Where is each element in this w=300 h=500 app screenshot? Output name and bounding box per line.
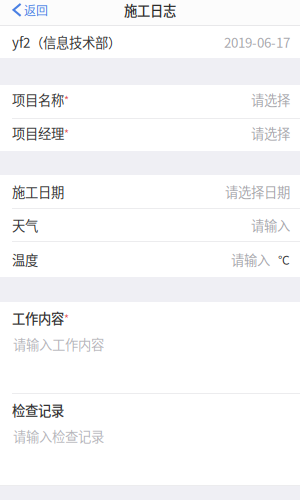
staticText: * [64,310,69,326]
staticText: 请选择日期 [225,182,290,201]
staticText: 工作内容 [12,308,64,328]
staticText: 请输入工作内容 [13,334,104,354]
staticText: 请输入 [231,250,270,269]
staticText: 2019-06-17 [224,32,290,52]
staticText: 返回 [24,1,48,19]
button[interactable]: 天气 [0,209,300,241]
button[interactable]: 项目经理 [0,119,300,151]
staticText: 项目经理 [12,123,64,143]
button[interactable]: 温度 [0,242,300,277]
staticText: 施工日志 [124,0,176,20]
staticText: 请输入检查记录 [13,426,104,446]
staticText: 项目名称 [12,90,64,109]
staticText: 请选择 [251,123,290,143]
staticText: 请选择 [251,90,290,109]
staticText: 请输入 [251,215,290,235]
staticText: yf2（信息技术部） [12,32,121,52]
button[interactable]: 施工日期 [0,175,300,208]
button[interactable]: 项目名称 [0,85,300,118]
button[interactable]: 请输入检查记录 [0,426,300,485]
staticText: °C [278,251,290,268]
staticText: * [64,92,69,107]
staticText: 施工日期 [12,182,64,201]
staticText: 天气 [12,215,38,235]
button[interactable]: 返回 [0,0,56,20]
staticText: * [64,125,69,141]
staticText: 检查记录 [12,400,64,420]
staticText: 温度 [12,250,38,269]
button[interactable]: 请输入工作内容 [0,334,300,393]
